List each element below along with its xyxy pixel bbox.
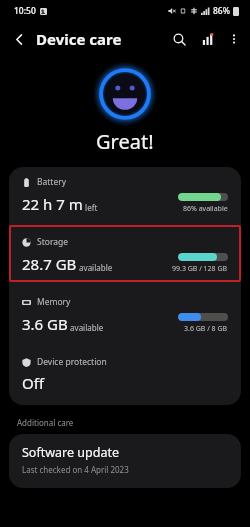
staticText: Battery xyxy=(37,176,67,188)
button[interactable]: More options xyxy=(221,26,247,52)
staticText: 28.7 GB xyxy=(22,254,77,274)
staticText: Additional care xyxy=(17,417,74,428)
staticText: Last checked on 4 April 2023 xyxy=(22,464,129,475)
staticText: left xyxy=(83,202,98,213)
staticText: Device protection xyxy=(37,356,107,368)
staticText: 99.3 GB / 128 GB xyxy=(172,264,228,274)
staticText: available xyxy=(77,262,113,273)
button[interactable]: Diagnostics xyxy=(193,25,221,53)
staticText: Device care xyxy=(36,29,122,49)
staticText: 86% available xyxy=(183,204,228,214)
button[interactable]: Back xyxy=(6,26,32,52)
button[interactable]: Software update xyxy=(9,434,241,488)
staticText: 86% xyxy=(213,5,230,17)
button[interactable]: Battery xyxy=(9,167,241,223)
staticText: Memory xyxy=(37,296,71,308)
staticText: available xyxy=(68,322,104,333)
staticText: Software update xyxy=(22,444,119,461)
button[interactable]: Storage xyxy=(9,227,241,283)
staticText: 10:50 xyxy=(14,5,36,17)
staticText: 22 h 7 m xyxy=(22,194,83,214)
staticText: 3.6 GB xyxy=(22,314,68,334)
button[interactable]: Search xyxy=(165,25,193,53)
button[interactable]: Device protection xyxy=(9,347,241,405)
staticText: Off xyxy=(22,373,45,393)
staticText: Great! xyxy=(96,128,154,155)
staticText: 3.6 GB / 8 GB xyxy=(184,324,228,334)
staticText: Storage xyxy=(37,236,69,248)
button[interactable]: Memory xyxy=(9,287,241,343)
